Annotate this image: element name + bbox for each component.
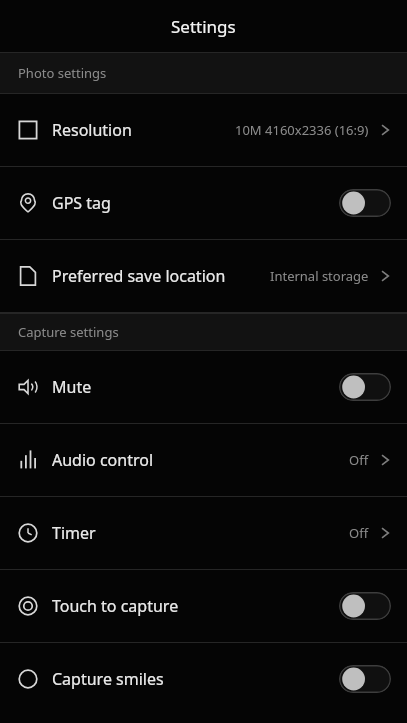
- button[interactable]: Capture smiles: [0, 643, 407, 715]
- button[interactable]: Touch to capture: [0, 570, 407, 642]
- staticText: Preferred save location: [52, 265, 226, 287]
- button[interactable]: Preferred save location: [0, 240, 407, 312]
- staticText: Mute: [52, 376, 92, 398]
- button[interactable]: Toggle: [339, 665, 391, 693]
- staticText: Resolution: [52, 119, 132, 141]
- staticText: Touch to capture: [52, 595, 179, 617]
- staticText: Audio control: [52, 449, 154, 471]
- staticText: Timer: [52, 522, 96, 544]
- button[interactable]: Mute: [0, 351, 407, 423]
- staticText: Capture smiles: [52, 668, 164, 690]
- staticText: Photo settings: [18, 64, 107, 82]
- staticText: 10M 4160x2336 (16:9): [235, 121, 369, 139]
- button[interactable]: Resolution: [0, 94, 407, 166]
- button[interactable]: GPS tag: [0, 167, 407, 239]
- staticText: Settings: [171, 15, 236, 38]
- staticText: Off: [349, 524, 369, 542]
- button[interactable]: Timer: [0, 497, 407, 569]
- button[interactable]: Audio control: [0, 424, 407, 496]
- staticText: Off: [349, 451, 369, 469]
- button[interactable]: Toggle: [339, 189, 391, 217]
- staticText: Internal storage: [270, 267, 369, 285]
- staticText: GPS tag: [52, 192, 111, 214]
- staticText: Capture settings: [18, 323, 119, 341]
- button[interactable]: Toggle: [339, 592, 391, 620]
- button[interactable]: Toggle: [339, 373, 391, 401]
